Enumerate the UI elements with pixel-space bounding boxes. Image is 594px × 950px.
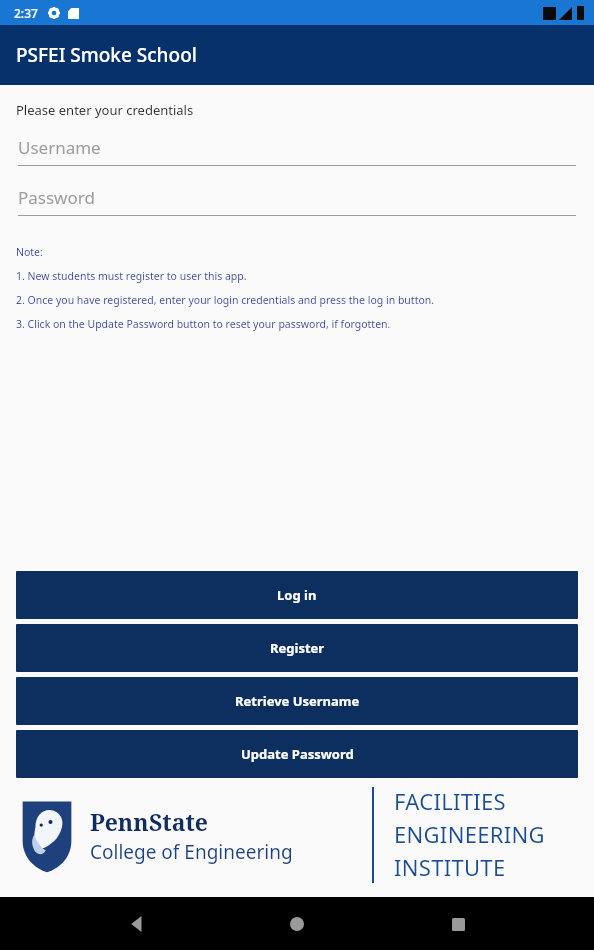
staticText: 2:37 xyxy=(14,5,38,21)
staticText: 1. New students must register to user th… xyxy=(16,269,247,283)
staticText: State xyxy=(149,806,208,837)
staticText: Update Password xyxy=(241,745,354,763)
staticText: Penn xyxy=(90,806,149,837)
button[interactable]: Retrieve Username xyxy=(16,677,578,725)
button[interactable]: Register xyxy=(16,624,578,672)
button[interactable]: Recent apps xyxy=(434,900,482,948)
staticText: 3. Click on the Update Password button t… xyxy=(16,317,391,331)
staticText: PSFEI Smoke School xyxy=(16,42,197,68)
staticText: 2. Once you have registered, enter your … xyxy=(16,293,435,307)
staticText: Please enter your credentials xyxy=(16,101,194,119)
staticText: FACILITIES xyxy=(394,786,506,816)
button[interactable]: Log in xyxy=(16,571,578,619)
button[interactable]: Username xyxy=(18,136,576,166)
staticText: Log in xyxy=(277,586,317,604)
staticText: ENGINEERING xyxy=(394,819,545,849)
button[interactable]: Update Password xyxy=(16,730,578,778)
staticText: INSTITUTE xyxy=(394,852,506,882)
staticText: Register xyxy=(270,639,325,657)
button[interactable]: Back xyxy=(113,900,161,948)
staticText: Password xyxy=(18,186,95,209)
button[interactable]: Home xyxy=(273,900,321,948)
button[interactable]: Password xyxy=(18,186,576,216)
staticText: Note: xyxy=(16,245,43,259)
other: Penn State shield xyxy=(18,797,76,873)
staticText: Username xyxy=(18,136,101,159)
staticText: College of Engineering xyxy=(90,839,293,865)
staticText: Retrieve Username xyxy=(235,692,360,710)
